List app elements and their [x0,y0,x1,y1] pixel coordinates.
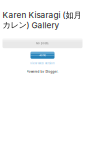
staticText: Karen Kisaragi (如月 [2,10,81,20]
button[interactable]: Powered by Blogger. [0,70,85,73]
staticText: No posts. [36,42,49,45]
staticText: カレン) Gallery [2,20,59,30]
staticText: Home [38,54,46,57]
staticText: View web version [30,62,55,65]
button[interactable]: Home [30,52,54,59]
button[interactable]: View web version [0,62,85,65]
staticText: Powered by Blogger. [26,70,58,73]
